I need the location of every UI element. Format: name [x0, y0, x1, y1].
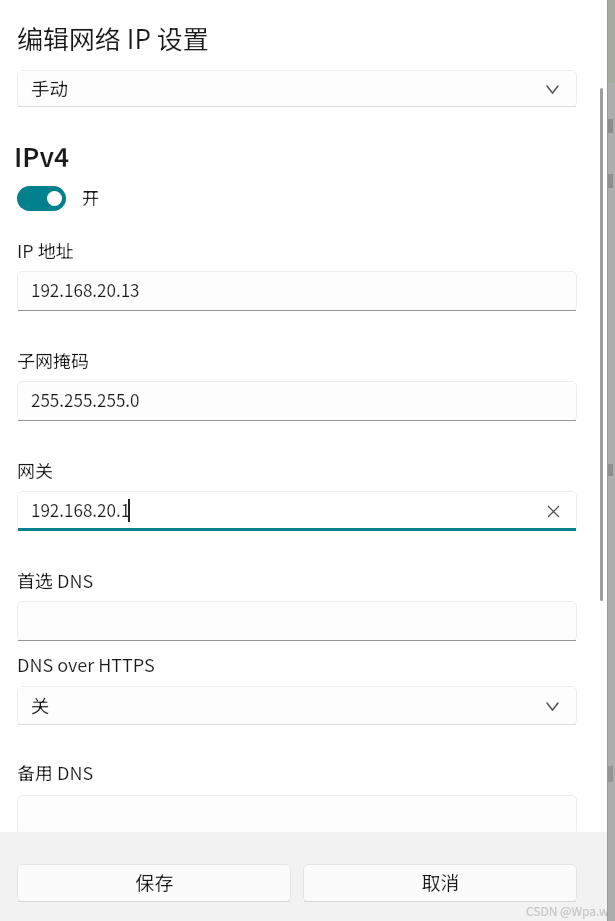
button[interactable]: 192.168.20.13	[17, 271, 577, 311]
button[interactable]: 取消	[303, 864, 577, 902]
button[interactable]: Expand	[537, 74, 567, 104]
button[interactable]	[17, 601, 577, 641]
staticText: 取消	[421, 868, 460, 896]
button[interactable]: 关	[17, 686, 577, 725]
staticText: IP 地址	[17, 237, 74, 263]
staticText: 开	[82, 185, 100, 210]
staticText: 关	[31, 692, 50, 719]
staticText: 网关	[17, 457, 53, 483]
staticText: 首选 DNS	[17, 567, 94, 593]
staticText: 255.255.255.0	[31, 387, 140, 412]
staticText: 192.168.20.1	[31, 497, 131, 522]
button[interactable]: 保存	[17, 864, 291, 902]
staticText: DNS over HTTPS	[17, 651, 155, 677]
button[interactable]: Clear	[537, 495, 569, 527]
staticText: 子网掩码	[17, 347, 89, 373]
staticText: 手动	[31, 75, 69, 102]
staticText: 192.168.20.13	[31, 277, 140, 302]
staticText: CSDN @Wpa.wk	[526, 902, 615, 919]
staticText: 保存	[135, 868, 174, 896]
button[interactable]: 255.255.255.0	[17, 381, 577, 421]
button[interactable]: 192.168.20.1	[17, 491, 577, 531]
button[interactable]: IPv4 on	[17, 186, 66, 211]
button[interactable]	[17, 795, 577, 835]
button[interactable]: 手动	[17, 70, 577, 107]
staticText: 备用 DNS	[17, 759, 94, 785]
staticText: 编辑网络 IP 设置	[17, 19, 209, 57]
staticText: IPv4	[14, 137, 70, 175]
button[interactable]: Expand	[537, 691, 567, 721]
